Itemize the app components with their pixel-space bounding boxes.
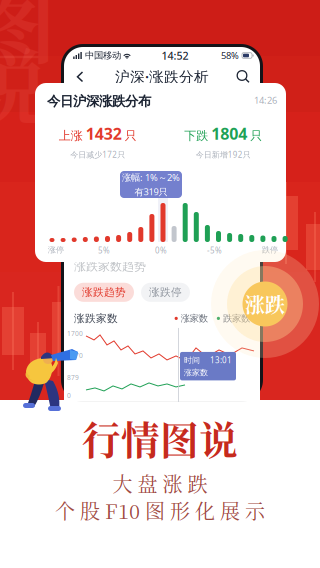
- staticText: 14:52: [161, 48, 188, 63]
- staticText: 涨跌家数趋势: [74, 259, 146, 274]
- staticText: 大 盘 涨 跌: [112, 469, 207, 498]
- staticText: 今日沪深涨跌分布: [47, 93, 151, 109]
- staticText: 跌家数: [220, 313, 250, 324]
- staticText: 5%: [98, 245, 110, 256]
- staticText: 上涨: [59, 128, 83, 143]
- staticText: 个 股 F10 图 形 化 展 示: [55, 496, 265, 525]
- staticText: 涨停: [48, 245, 64, 255]
- staticText: -5%: [207, 245, 222, 256]
- staticText: 时间: [184, 355, 200, 365]
- staticText: 879: [67, 373, 79, 382]
- staticText: 涨家数: [178, 313, 208, 324]
- staticText: 1432: [86, 123, 122, 144]
- staticText: 58%: [221, 49, 239, 62]
- staticText: 只: [250, 128, 262, 143]
- staticText: 下跌: [184, 128, 208, 143]
- staticText: 有319只: [134, 185, 167, 198]
- button[interactable]: Search: [235, 67, 251, 85]
- staticText: 今日新增192只: [196, 149, 251, 160]
- staticText: 0: [67, 391, 71, 400]
- staticText: 1804: [211, 123, 247, 144]
- staticText: 行情图说: [82, 410, 238, 466]
- staticText: 13:01: [210, 355, 232, 365]
- staticText: 涨家数: [184, 368, 208, 377]
- staticText: 只: [125, 128, 137, 143]
- staticText: 涨跌家数: [74, 312, 118, 325]
- staticText: 1270: [67, 351, 83, 360]
- staticText: 1700: [67, 329, 83, 338]
- staticText: 今日减少172只: [70, 149, 125, 160]
- staticText: 说: [0, 24, 48, 142]
- staticText: 涨跌: [245, 290, 285, 318]
- staticText: 涨跌停: [149, 286, 182, 299]
- staticText: 跌停: [262, 245, 278, 255]
- staticText: 0%: [155, 245, 167, 256]
- button[interactable]: 涨跌趋势: [74, 283, 134, 302]
- staticText: 沪深·涨跌分析: [115, 67, 209, 86]
- button[interactable]: 涨跌停: [141, 283, 190, 302]
- staticText: 图: [0, 0, 56, 80]
- staticText: 涨幅: 1%～2%: [122, 171, 180, 183]
- staticText: 中国移动: [82, 50, 121, 61]
- staticText: 14:26: [254, 94, 277, 106]
- staticText: 涨跌趋势: [82, 286, 126, 299]
- button[interactable]: Back: [73, 67, 87, 85]
